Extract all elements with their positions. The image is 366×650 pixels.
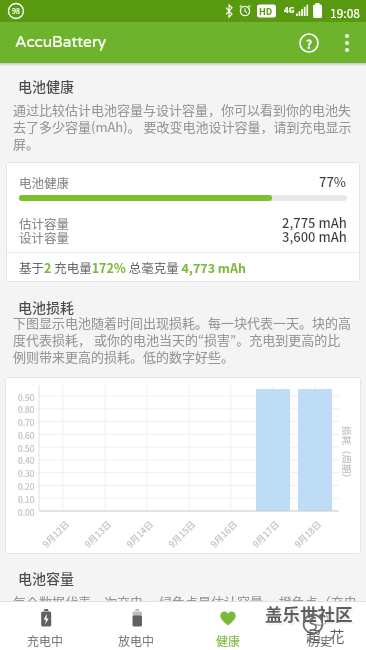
staticText: 0.60 xyxy=(18,429,35,441)
staticText: 19:08 xyxy=(330,4,360,21)
staticText: 电池容量 xyxy=(18,568,74,588)
staticText: 77% xyxy=(319,172,347,191)
staticText: 0.70 xyxy=(18,416,35,428)
staticText: 9月14日 xyxy=(123,518,155,550)
staticText: 0.00 xyxy=(18,506,35,518)
staticText: 健康 xyxy=(216,632,241,649)
staticText: 基于2 充电量172% 总毫克量 4,773 mAh xyxy=(19,258,246,276)
staticText: 电池健康 xyxy=(19,173,70,191)
staticText: AccuBattery xyxy=(15,33,107,52)
staticText: 设计容量 xyxy=(19,228,70,246)
staticText: 每个数据代表一次充电。 绿色点是估计容量。 橙色点（充电 xyxy=(13,592,363,611)
staticText: 0.80 xyxy=(18,403,35,415)
staticText: 9月13日 xyxy=(81,518,113,550)
staticText: 98 xyxy=(12,6,20,16)
staticText: 9月15日 xyxy=(165,518,197,550)
staticText: ? xyxy=(306,35,313,52)
staticText: 下图显示电池随着时间出现损耗。每一块代表一天。块的高度代表损耗， 或你的电池当天… xyxy=(13,313,352,365)
staticText: 通过比较估计电池容量与设计容量，你可以看到你的电池失去了多少容量(mAh)。 要… xyxy=(13,100,358,152)
staticText: 2,775 mAh xyxy=(282,213,347,232)
button[interactable]: 健康 xyxy=(182,602,274,650)
staticText: 0.50 xyxy=(18,442,35,454)
staticText: 超_花 xyxy=(306,625,345,647)
staticText: 损耗（周期） xyxy=(342,426,354,484)
staticText: 0.40 xyxy=(18,454,35,466)
staticText: 9月17日 xyxy=(249,518,281,550)
staticText: 0.90 xyxy=(18,391,35,403)
staticText: 0.30 xyxy=(18,467,35,479)
staticText: 估计容量 xyxy=(19,214,70,232)
staticText: 放电中 xyxy=(118,632,155,649)
button[interactable]: 充电中 xyxy=(0,602,91,650)
button[interactable] xyxy=(334,30,360,56)
staticText: 盖乐世社区 xyxy=(265,601,353,626)
staticText: 0.10 xyxy=(18,493,35,505)
staticText: 历史 xyxy=(308,632,333,649)
staticText: 9月16日 xyxy=(207,518,239,550)
button[interactable]: 放电中 xyxy=(91,602,182,650)
staticText: 盖乐世社区 xyxy=(267,603,355,628)
staticText: 9月18日 xyxy=(291,518,323,550)
staticText: 电池健康 xyxy=(18,76,74,96)
staticText: 0.20 xyxy=(18,480,35,492)
staticText: 4G xyxy=(284,4,295,16)
button[interactable]: ? xyxy=(296,30,322,56)
staticText: 充电中 xyxy=(27,632,64,649)
button[interactable]: 历史 xyxy=(274,602,366,650)
staticText: 9月12日 xyxy=(39,518,71,550)
staticText: 3,600 mAh xyxy=(282,227,347,246)
staticText: 电池损耗 xyxy=(18,297,74,317)
staticText: HD xyxy=(259,5,273,18)
